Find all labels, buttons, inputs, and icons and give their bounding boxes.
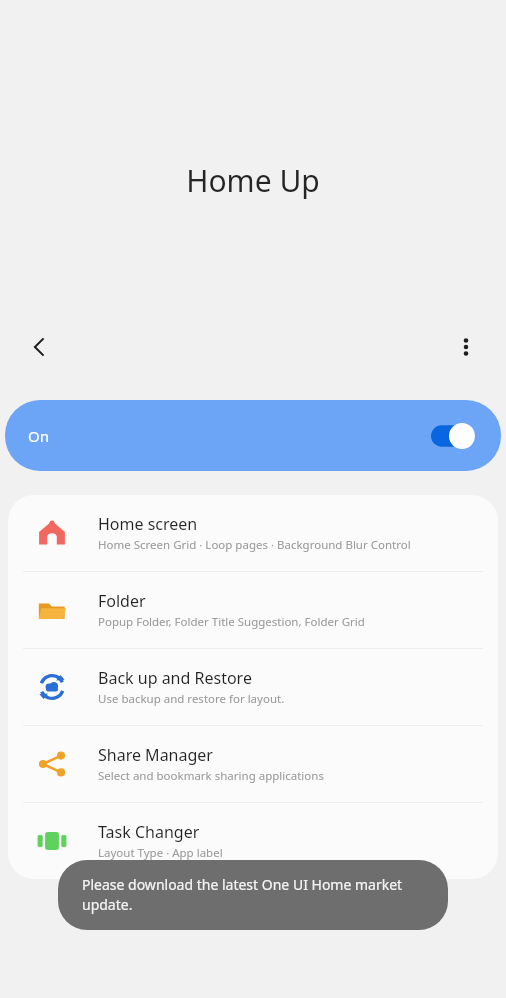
button[interactable]: Task Changer <box>8 803 498 879</box>
staticText: Layout Type · App label <box>98 845 223 861</box>
button[interactable]: More options <box>443 324 489 370</box>
staticText: Home Up <box>0 160 506 201</box>
staticText: Use backup and restore for layout. <box>98 691 285 707</box>
button[interactable]: Folder <box>8 572 498 648</box>
staticText: Task Changer <box>98 821 200 843</box>
staticText: Home screen <box>98 513 198 535</box>
button[interactable]: Share Manager <box>8 726 498 802</box>
staticText: Please download the latest One UI Home m… <box>82 875 424 915</box>
staticText: Share Manager <box>98 744 213 766</box>
button[interactable]: On <box>5 400 501 471</box>
staticText: Select and bookmark sharing applications <box>98 768 324 784</box>
button[interactable]: Back <box>16 324 62 370</box>
staticText: Back up and Restore <box>98 667 252 689</box>
staticText: On <box>28 426 49 446</box>
button[interactable]: Home screen <box>8 495 498 571</box>
button[interactable]: Back up and Restore <box>8 649 498 725</box>
staticText: Folder <box>98 590 146 612</box>
staticText: Popup Folder, Folder Title Suggestion, F… <box>98 614 365 630</box>
staticText: Home Screen Grid · Loop pages · Backgrou… <box>98 537 411 553</box>
